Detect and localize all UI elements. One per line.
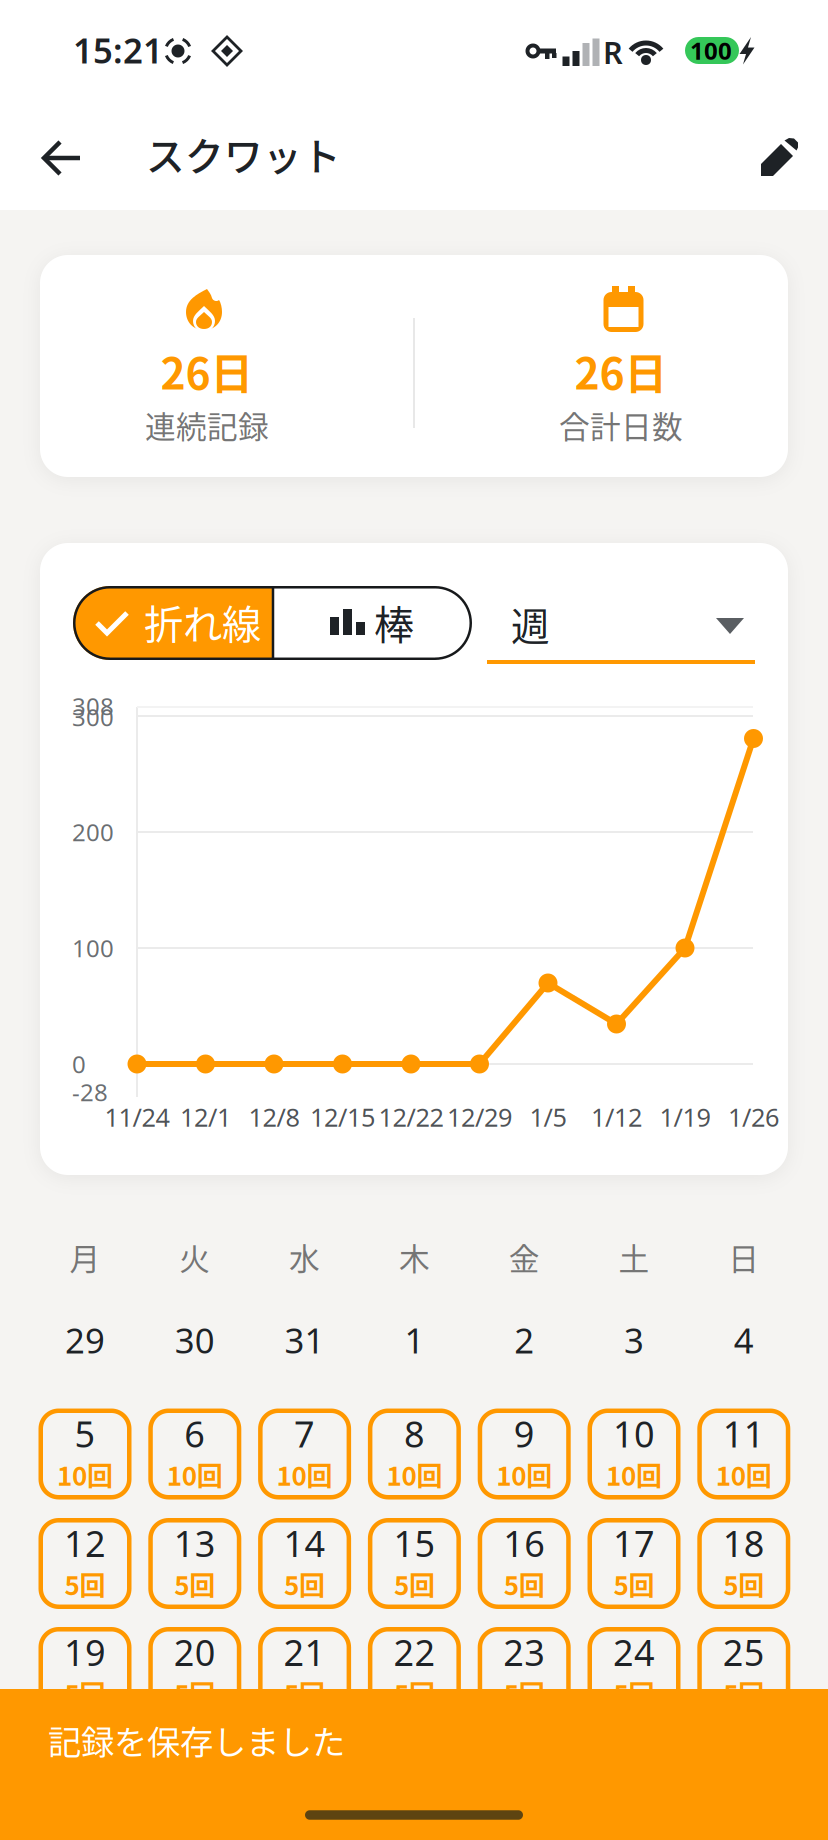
- staticText: 30: [175, 1317, 215, 1363]
- staticText: 10回: [57, 1456, 113, 1493]
- staticText: 5回: [613, 1674, 654, 1712]
- staticText: 10回: [386, 1456, 442, 1493]
- staticText: 日: [728, 1235, 759, 1279]
- staticText: スクワット: [146, 126, 341, 182]
- staticText: 10回: [277, 1456, 333, 1493]
- staticText: 29: [65, 1317, 105, 1363]
- staticText: 5回: [64, 1674, 105, 1712]
- button[interactable]: 18: [697, 1518, 790, 1609]
- staticText: 5回: [394, 1565, 435, 1603]
- staticText: 31: [285, 1317, 325, 1363]
- staticText: 100: [72, 932, 114, 964]
- staticText: 10回: [496, 1456, 552, 1493]
- staticText: 折れ線: [144, 593, 261, 650]
- button[interactable]: 14: [258, 1518, 351, 1609]
- staticText: 17: [613, 1519, 655, 1567]
- button[interactable]: 9: [478, 1408, 571, 1499]
- staticText: 11/24: [104, 1100, 169, 1134]
- button[interactable]: 21: [258, 1627, 351, 1718]
- staticText: 26日: [160, 340, 253, 402]
- button[interactable]: 7: [258, 1408, 351, 1499]
- staticText: 連続記録: [145, 403, 269, 447]
- staticText: 1/26: [728, 1100, 779, 1134]
- staticText: 12/15: [310, 1100, 375, 1134]
- staticText: 16: [503, 1519, 545, 1567]
- staticText: 11: [723, 1410, 765, 1457]
- staticText: 24: [613, 1628, 655, 1676]
- staticText: -28: [72, 1076, 108, 1108]
- button[interactable]: 13: [148, 1518, 241, 1609]
- staticText: 5回: [723, 1565, 764, 1603]
- button[interactable]: [761, 138, 798, 176]
- button[interactable]: 6: [148, 1408, 241, 1499]
- staticText: 18: [723, 1519, 765, 1567]
- button[interactable]: 24: [587, 1627, 680, 1718]
- staticText: 5回: [284, 1674, 325, 1712]
- button[interactable]: [39, 140, 85, 176]
- button[interactable]: 15: [368, 1518, 461, 1609]
- staticText: 13: [174, 1519, 216, 1567]
- button[interactable]: 19: [38, 1627, 131, 1718]
- button[interactable]: 20: [148, 1627, 241, 1718]
- button[interactable]: 8: [368, 1408, 461, 1499]
- button[interactable]: 23: [478, 1627, 571, 1718]
- staticText: 棒: [374, 593, 414, 651]
- staticText: 12/8: [248, 1100, 299, 1134]
- staticText: 12: [64, 1519, 106, 1567]
- button[interactable]: 折れ線: [73, 586, 273, 660]
- staticText: 1/5: [529, 1100, 566, 1134]
- staticText: 記録を保存しました: [48, 1716, 345, 1764]
- staticText: 100: [690, 35, 732, 66]
- staticText: 21: [284, 1628, 326, 1676]
- button[interactable]: 5: [38, 1408, 131, 1499]
- staticText: 10回: [716, 1456, 772, 1493]
- button[interactable]: 25: [697, 1627, 790, 1718]
- staticText: 3: [624, 1317, 644, 1363]
- button[interactable]: 12: [38, 1518, 131, 1609]
- staticText: 5回: [723, 1674, 764, 1712]
- button[interactable]: 11: [697, 1408, 790, 1499]
- button[interactable]: 棒: [273, 586, 472, 660]
- staticText: 週: [511, 596, 550, 652]
- staticText: 200: [72, 816, 114, 848]
- staticText: 5回: [613, 1565, 654, 1603]
- staticText: 12/29: [447, 1100, 512, 1134]
- staticText: 308: [72, 690, 114, 722]
- staticText: 14: [284, 1519, 326, 1567]
- staticText: 0: [72, 1048, 86, 1080]
- staticText: 5回: [284, 1565, 325, 1603]
- button[interactable]: 22: [368, 1627, 461, 1718]
- staticText: 23: [503, 1628, 545, 1676]
- staticText: 2: [514, 1317, 534, 1363]
- staticText: 1/12: [591, 1100, 642, 1134]
- button[interactable]: 10: [587, 1408, 680, 1499]
- button[interactable]: 週: [487, 586, 755, 666]
- staticText: 5回: [504, 1565, 545, 1603]
- staticText: 12/1: [180, 1100, 231, 1134]
- staticText: 10: [613, 1410, 655, 1457]
- button[interactable]: 16: [478, 1518, 571, 1609]
- staticText: 10回: [606, 1456, 662, 1493]
- staticText: 25: [723, 1628, 765, 1676]
- staticText: 5: [74, 1410, 95, 1457]
- staticText: 15:21: [73, 27, 163, 73]
- staticText: 19: [64, 1628, 106, 1676]
- staticText: 1: [404, 1317, 424, 1363]
- staticText: 300: [72, 701, 114, 733]
- staticText: 木: [399, 1235, 430, 1279]
- staticText: 10回: [167, 1456, 223, 1493]
- staticText: 土: [618, 1235, 649, 1279]
- staticText: 5回: [394, 1674, 435, 1712]
- staticText: 5回: [174, 1565, 215, 1603]
- staticText: 22: [393, 1628, 435, 1676]
- staticText: 8: [404, 1410, 425, 1457]
- staticText: 火: [179, 1235, 210, 1279]
- button[interactable]: 17: [587, 1518, 680, 1609]
- staticText: 月: [69, 1235, 100, 1279]
- staticText: 7: [294, 1410, 315, 1457]
- staticText: 合計日数: [559, 403, 683, 447]
- staticText: 20: [174, 1628, 216, 1676]
- staticText: 5回: [64, 1565, 105, 1603]
- staticText: R: [603, 32, 623, 72]
- staticText: 12/22: [378, 1100, 443, 1134]
